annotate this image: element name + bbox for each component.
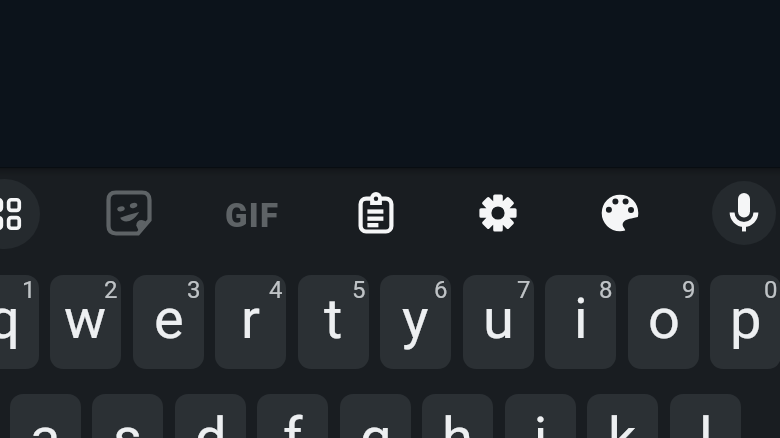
staticText: GIF <box>225 196 280 235</box>
staticText: g <box>360 405 392 438</box>
staticText: a <box>30 405 61 438</box>
button[interactable]: o <box>628 275 699 369</box>
staticText: 5 <box>352 276 366 304</box>
button[interactable]: Clipboard <box>346 183 406 243</box>
button[interactable]: a <box>10 394 81 438</box>
staticText: y <box>402 286 429 352</box>
button[interactable]: q <box>0 275 39 369</box>
button[interactable]: h <box>422 394 493 438</box>
button[interactable]: Open apps <box>0 179 40 249</box>
staticText: e <box>154 286 184 352</box>
button[interactable]: Settings <box>468 183 528 243</box>
button[interactable]: w <box>50 275 121 369</box>
button[interactable]: g <box>340 394 411 438</box>
staticText: 8 <box>599 276 613 304</box>
staticText: h <box>442 405 473 438</box>
staticText: j <box>534 405 548 438</box>
button[interactable]: GIF <box>212 185 292 245</box>
staticText: 3 <box>187 276 201 304</box>
staticText: d <box>195 405 227 438</box>
staticText: k <box>608 405 637 438</box>
staticText: f <box>283 405 303 438</box>
staticText: 4 <box>269 276 283 304</box>
staticText: 6 <box>434 276 448 304</box>
staticText: i <box>574 286 588 352</box>
staticText: r <box>241 286 260 352</box>
button[interactable]: t <box>298 275 369 369</box>
button[interactable]: i <box>545 275 616 369</box>
staticText: w <box>64 286 107 352</box>
button[interactable]: k <box>587 394 658 438</box>
staticText: 2 <box>104 276 118 304</box>
button[interactable]: d <box>175 394 246 438</box>
button[interactable]: p <box>710 275 780 369</box>
staticText: 1 <box>22 276 36 304</box>
staticText: o <box>648 286 680 352</box>
staticText: l <box>699 405 713 438</box>
staticText: s <box>113 405 142 438</box>
staticText: t <box>324 286 343 352</box>
staticText: q <box>0 286 20 352</box>
button[interactable]: Stickers <box>99 183 159 243</box>
button[interactable]: f <box>257 394 328 438</box>
staticText: 0 <box>764 276 778 304</box>
staticText: p <box>730 286 762 352</box>
staticText: 9 <box>682 276 696 304</box>
staticText: u <box>483 286 514 352</box>
button[interactable]: j <box>505 394 576 438</box>
button[interactable]: u <box>463 275 534 369</box>
button[interactable]: Themes <box>590 183 650 243</box>
button[interactable]: r <box>215 275 286 369</box>
button[interactable]: y <box>380 275 451 369</box>
button[interactable]: l <box>670 394 741 438</box>
button[interactable]: Voice input <box>712 181 776 245</box>
button[interactable]: e <box>133 275 204 369</box>
staticText: 7 <box>517 276 531 304</box>
button[interactable]: s <box>92 394 163 438</box>
